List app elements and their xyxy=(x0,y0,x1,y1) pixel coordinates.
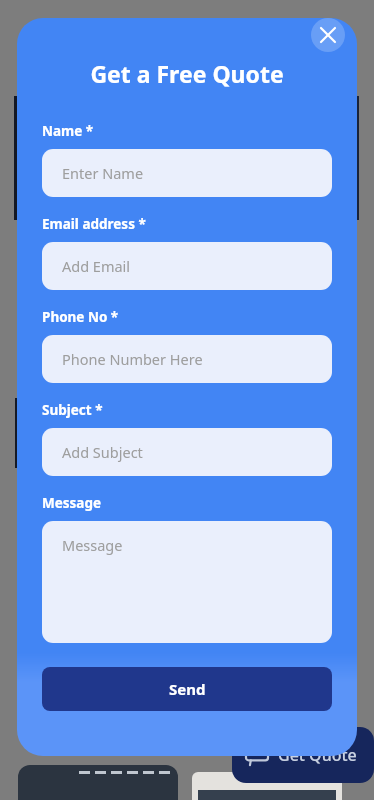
button[interactable]: Add Subject xyxy=(42,428,332,476)
button[interactable]: Phone Number Here xyxy=(42,335,332,383)
button[interactable]: Enter Name xyxy=(42,149,332,197)
staticText: Get Quote xyxy=(278,744,357,766)
staticText: Message xyxy=(42,494,102,512)
staticText: Add Email xyxy=(62,256,131,276)
staticText: Message xyxy=(62,535,123,555)
button[interactable]: Message xyxy=(42,521,332,643)
button[interactable]: Send xyxy=(42,667,332,711)
staticText: Phone Number Here xyxy=(62,349,203,369)
button[interactable]: Close xyxy=(311,18,345,52)
staticText: Send xyxy=(169,679,206,699)
staticText: Get a Free Quote xyxy=(42,58,332,89)
staticText: Enter Name xyxy=(62,163,144,183)
staticText: Email address * xyxy=(42,215,146,233)
button[interactable]: Get Quote xyxy=(232,727,374,783)
staticText: Add Subject xyxy=(62,442,143,462)
button[interactable]: Add Email xyxy=(42,242,332,290)
staticText: Name * xyxy=(42,122,94,140)
staticText: Subject * xyxy=(42,401,103,419)
staticText: Phone No * xyxy=(42,308,119,326)
